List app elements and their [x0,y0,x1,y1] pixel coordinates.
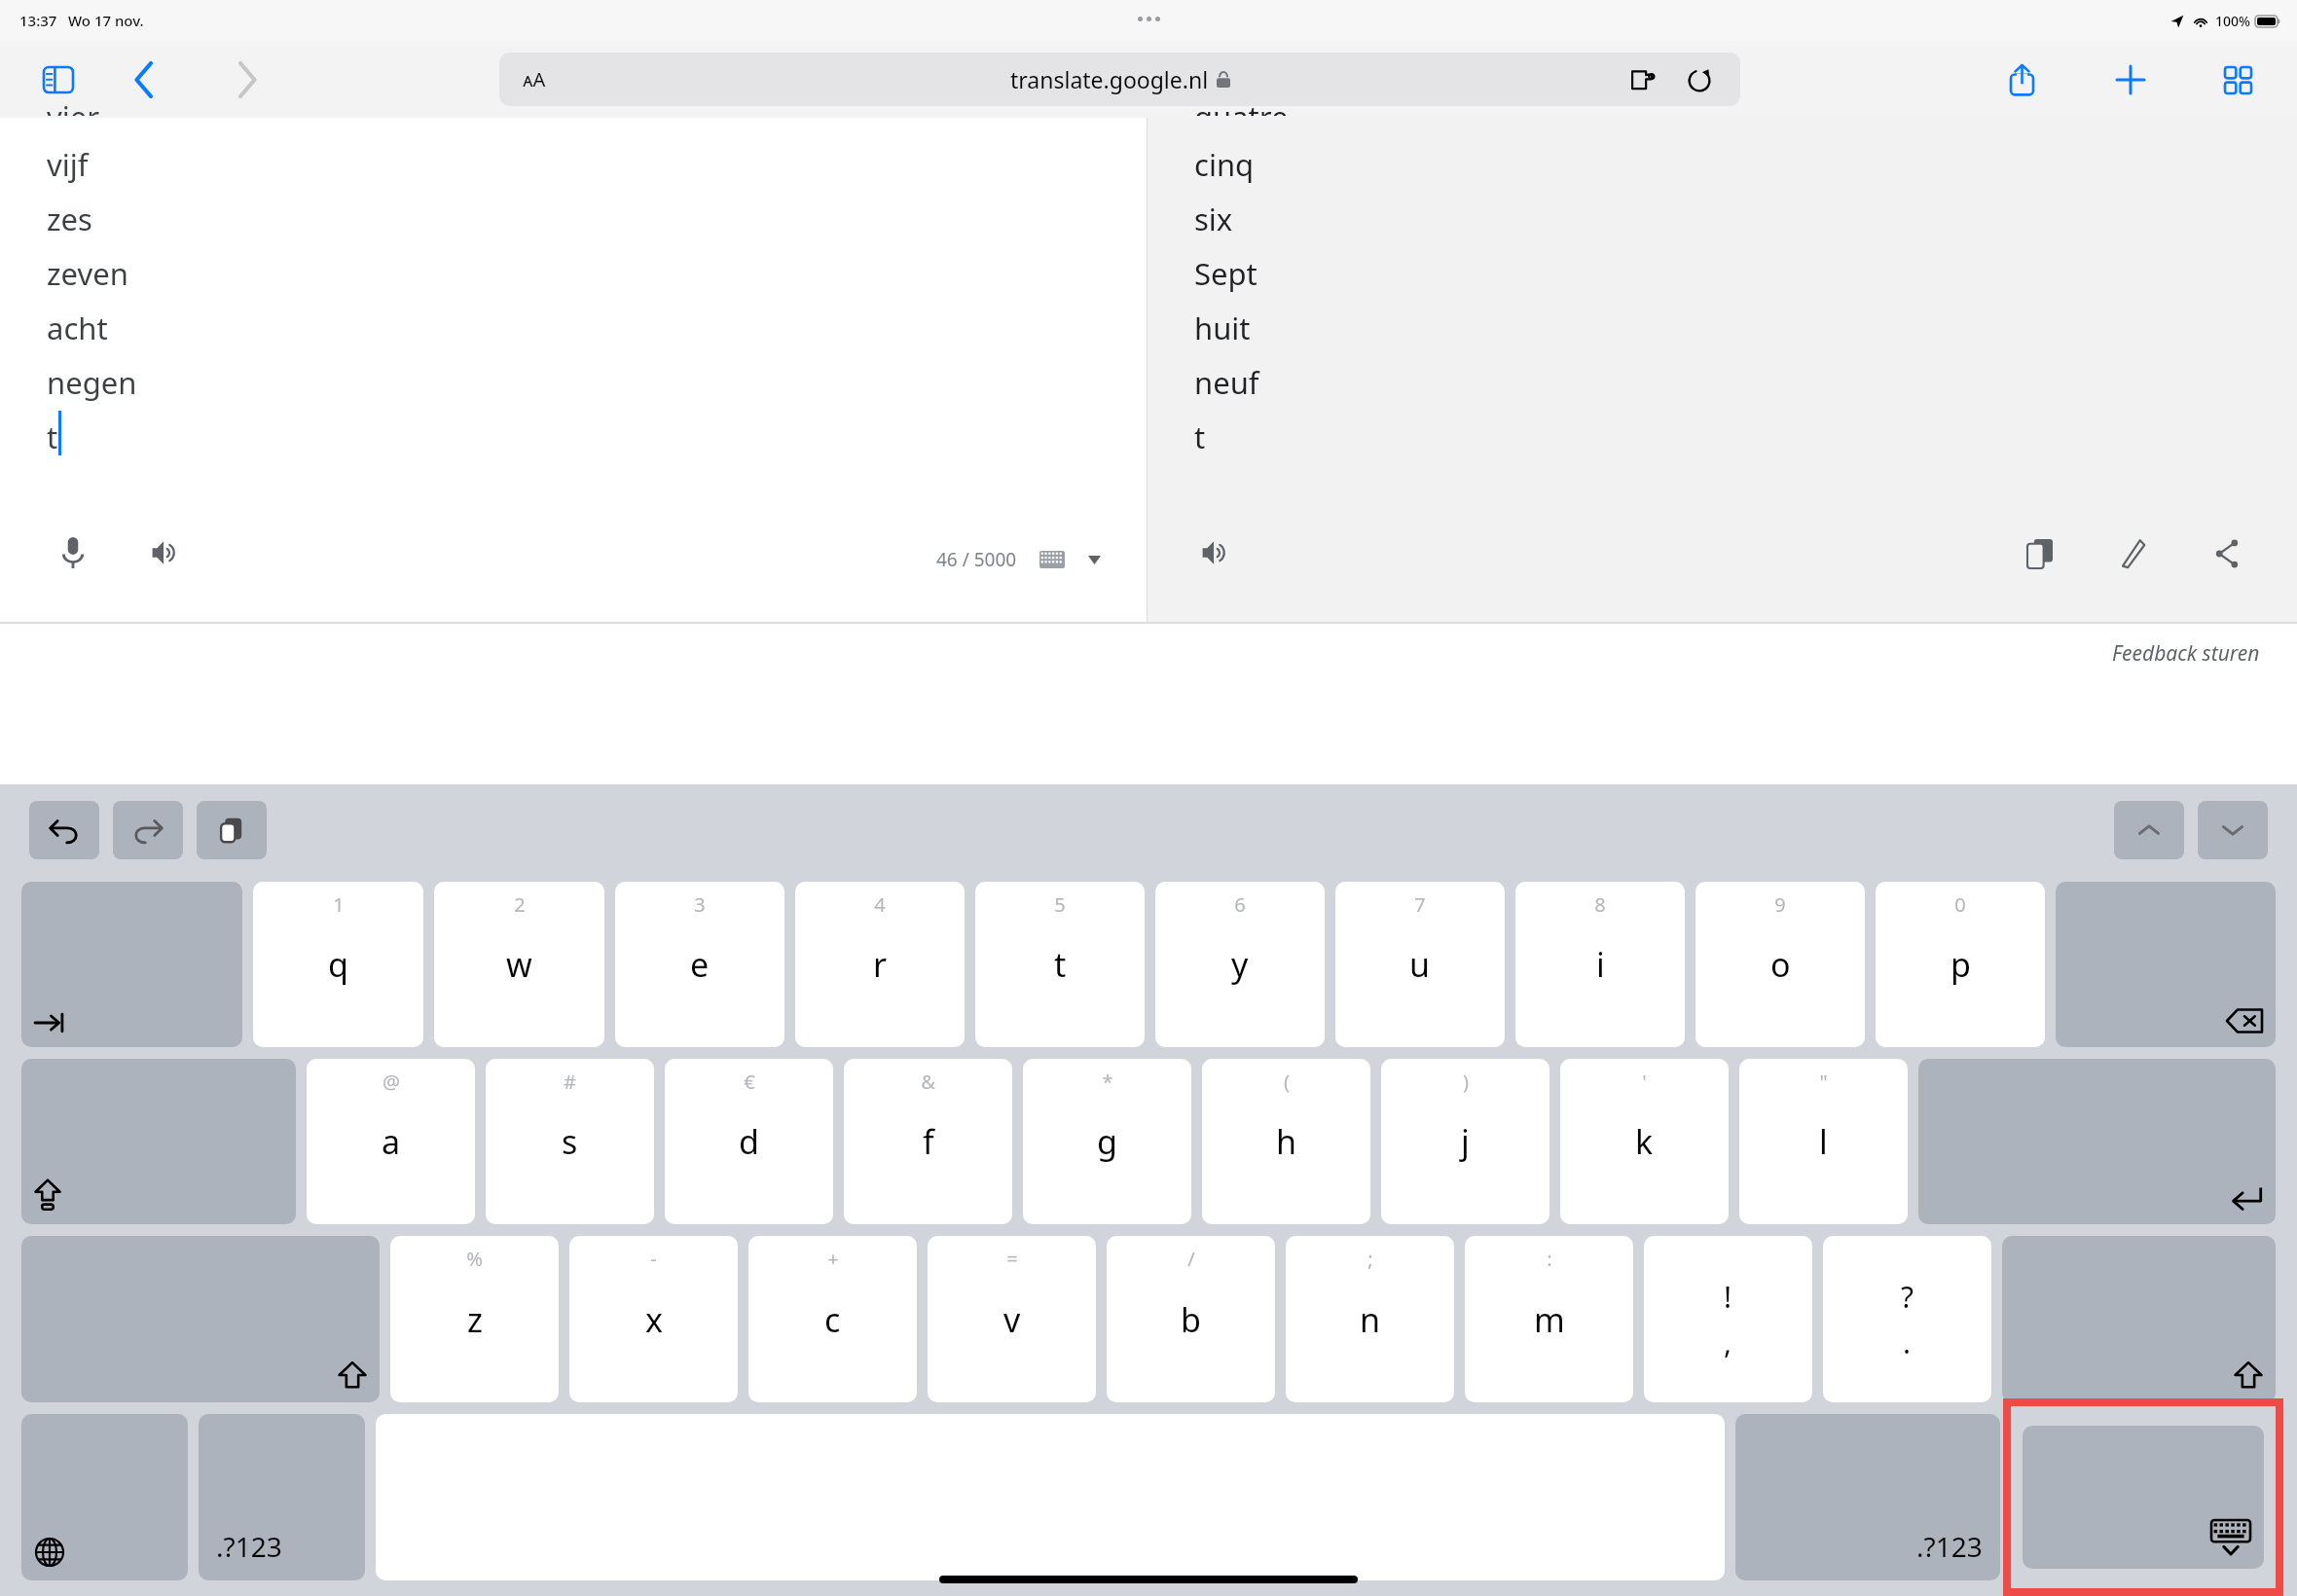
button[interactable]: Space [376,1414,1725,1580]
button[interactable]: e [615,882,784,1047]
staticText: i [1596,942,1605,987]
button[interactable]: Share [1997,55,2046,104]
staticText: 13:37 [19,11,57,30]
staticText: + [827,1246,839,1272]
staticText: 8 [1594,891,1606,918]
button[interactable]: z [390,1236,559,1402]
staticText: zes [47,199,92,239]
button[interactable]: New tab [2106,55,2155,104]
staticText: ( [1284,1069,1290,1095]
button[interactable]: Next field [2198,801,2268,859]
button[interactable]: Backspace [2056,882,2276,1047]
staticText: = [1006,1246,1018,1272]
staticText: 4 [874,891,886,918]
button[interactable]: p [1876,882,2045,1047]
staticText: y [1231,942,1249,987]
button[interactable]: Share translation [2202,528,2252,579]
button[interactable]: Feedback sturen [2112,639,2260,668]
button[interactable]: Tab [21,882,242,1047]
button[interactable]: Return [1918,1059,2276,1224]
staticText: t [47,417,58,457]
button[interactable]: .?123 [199,1414,365,1580]
staticText: t [1194,417,1206,457]
button[interactable]: l [1739,1059,1908,1224]
button[interactable]: b [1107,1236,1275,1402]
button[interactable]: u [1335,882,1505,1047]
staticText: negen [47,362,137,403]
staticText: zeven [47,253,128,294]
button[interactable]: m [1465,1236,1633,1402]
button[interactable]: h [1202,1059,1370,1224]
button[interactable]: x [569,1236,738,1402]
staticText: d [739,1119,759,1164]
button[interactable]: o [1695,882,1865,1047]
button[interactable]: Redo [113,801,183,859]
button[interactable]: Reload [1678,58,1721,101]
staticText: " [1819,1069,1828,1095]
staticText: 6 [1234,891,1246,918]
staticText: .?123 [1916,1528,1983,1565]
staticText: j [1461,1119,1470,1164]
staticText: b [1181,1297,1201,1342]
staticText: ᴀA [523,66,546,92]
staticText: / [1187,1246,1195,1272]
button[interactable]: ! [1644,1236,1812,1402]
button[interactable]: r [795,882,965,1047]
staticText: c [824,1297,841,1342]
staticText: * [1102,1069,1113,1095]
button[interactable]: Forward [224,56,271,103]
button[interactable]: Extensions [1622,58,1664,101]
button[interactable]: q [253,882,423,1047]
button[interactable]: Keyboard [1035,542,1070,577]
staticText: e [690,942,710,987]
button[interactable]: Switch keyboard [21,1414,188,1580]
staticText: & [921,1069,935,1095]
button[interactable]: a [307,1059,475,1224]
staticText: v [1003,1297,1021,1342]
staticText: 7 [1414,891,1426,918]
button[interactable]: s [486,1059,654,1224]
button[interactable]: f [844,1059,1012,1224]
staticText: huit [1194,308,1251,348]
button[interactable]: y [1155,882,1325,1047]
button[interactable]: k [1560,1059,1729,1224]
button[interactable]: Sidebar [37,58,80,101]
button[interactable]: j [1381,1059,1550,1224]
staticText: 100% [2215,12,2250,30]
button[interactable]: t [975,882,1145,1047]
button[interactable]: ᴀA [499,53,1740,106]
staticText: : [1547,1246,1552,1272]
button[interactable]: More input tools [1079,545,1109,574]
button[interactable]: Show tabs [2213,55,2262,104]
button[interactable]: Listen [140,526,193,579]
button[interactable]: Shift [2002,1236,2276,1402]
staticText: ! [1724,1277,1732,1317]
button[interactable]: Caps lock [21,1059,296,1224]
staticText: 3 [694,891,706,918]
button[interactable]: Edit [2108,528,2159,579]
staticText: a [382,1119,401,1164]
button[interactable]: i [1515,882,1685,1047]
button[interactable]: Shift [21,1236,380,1402]
staticText: w [506,942,532,987]
button[interactable]: Paste [197,801,267,859]
button[interactable]: g [1023,1059,1191,1224]
staticText: ; [1367,1246,1373,1272]
button[interactable]: v [928,1236,1096,1402]
button[interactable]: w [434,882,604,1047]
staticText: ' [1642,1069,1647,1095]
button[interactable]: Hide keyboard [2023,1426,2264,1569]
staticText: Wo 17 nov. [68,11,144,30]
button[interactable]: c [748,1236,917,1402]
button[interactable]: Voice input [47,526,99,579]
staticText: . [1903,1323,1912,1362]
button[interactable]: Back [121,56,167,103]
button[interactable]: n [1286,1236,1454,1402]
button[interactable]: ? [1823,1236,1991,1402]
button[interactable]: .?123 [1735,1414,2000,1580]
button[interactable]: Listen translation [1190,526,1243,579]
button[interactable]: Copy [2015,528,2065,579]
button[interactable]: d [665,1059,833,1224]
button[interactable]: Previous field [2114,801,2184,859]
button[interactable]: Undo [29,801,99,859]
